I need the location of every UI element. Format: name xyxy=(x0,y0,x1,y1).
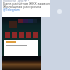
other: Profile xyxy=(57,9,62,14)
button[interactable] xyxy=(2,17,41,56)
staticText: Новости дня ❤ • xyxy=(3,0,29,3)
staticText: Банк расчётов ЖКХ заявил xyxy=(3,1,50,6)
button[interactable]: Новости дня ❤ • xyxy=(2,0,50,17)
staticText: Жилищная рассрочка xyxy=(3,4,42,9)
staticText: @Telegram xyxy=(3,8,20,12)
